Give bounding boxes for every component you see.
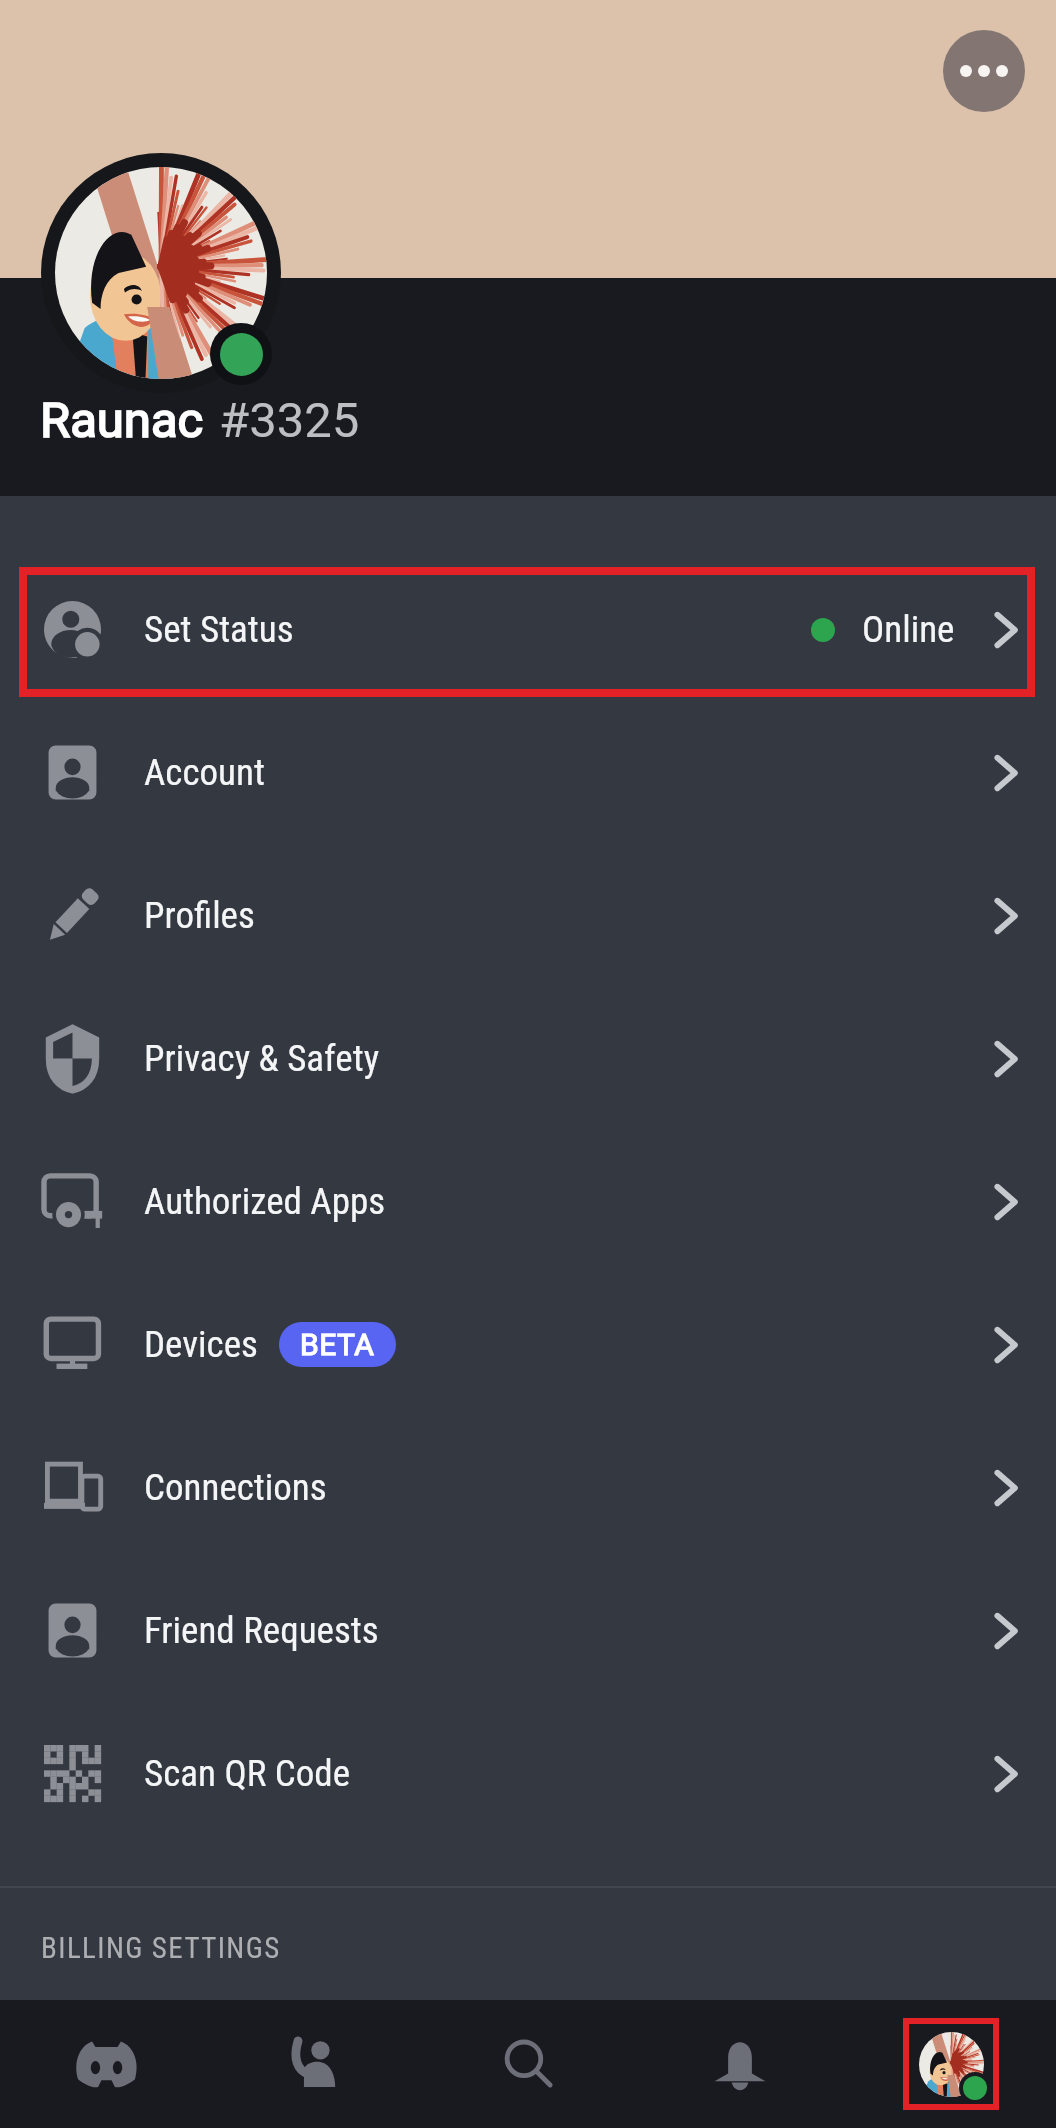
staticText: Authorized Apps	[144, 1180, 386, 1223]
button[interactable]: Profiles	[0, 844, 1056, 987]
staticText: #3325	[219, 392, 360, 449]
button[interactable]: Scan QR Code	[0, 1702, 1056, 1845]
staticText: Connections	[144, 1466, 327, 1509]
staticText: Privacy & Safety	[144, 1037, 380, 1080]
button[interactable]: Connections	[0, 1416, 1056, 1559]
staticText: Online	[862, 608, 955, 651]
button[interactable]: Profile	[903, 2018, 999, 2110]
button[interactable]: Account	[0, 701, 1056, 844]
staticText: Set Status	[144, 608, 294, 651]
button[interactable]: Devices	[0, 1273, 1056, 1416]
staticText: BILLING SETTINGS	[41, 1931, 281, 1965]
button[interactable]: Friends	[212, 2000, 423, 2128]
button[interactable]: Authorized Apps	[0, 1130, 1056, 1273]
staticText: Raunac	[40, 392, 204, 449]
button[interactable]: More options	[943, 30, 1025, 112]
staticText: Profiles	[144, 894, 255, 937]
staticText: Account	[144, 751, 265, 794]
staticText: BETA	[300, 1327, 375, 1362]
button[interactable]: Privacy & Safety	[0, 987, 1056, 1130]
staticText: Scan QR Code	[144, 1752, 351, 1795]
staticText: Devices	[144, 1323, 258, 1366]
button[interactable]: Notifications	[634, 2000, 845, 2128]
button[interactable]: Friend Requests	[0, 1559, 1056, 1702]
staticText: Friend Requests	[144, 1609, 379, 1652]
button[interactable]: Set Status	[0, 558, 1056, 701]
button[interactable]: Search	[423, 2000, 634, 2128]
button[interactable]: Home	[0, 2000, 212, 2128]
